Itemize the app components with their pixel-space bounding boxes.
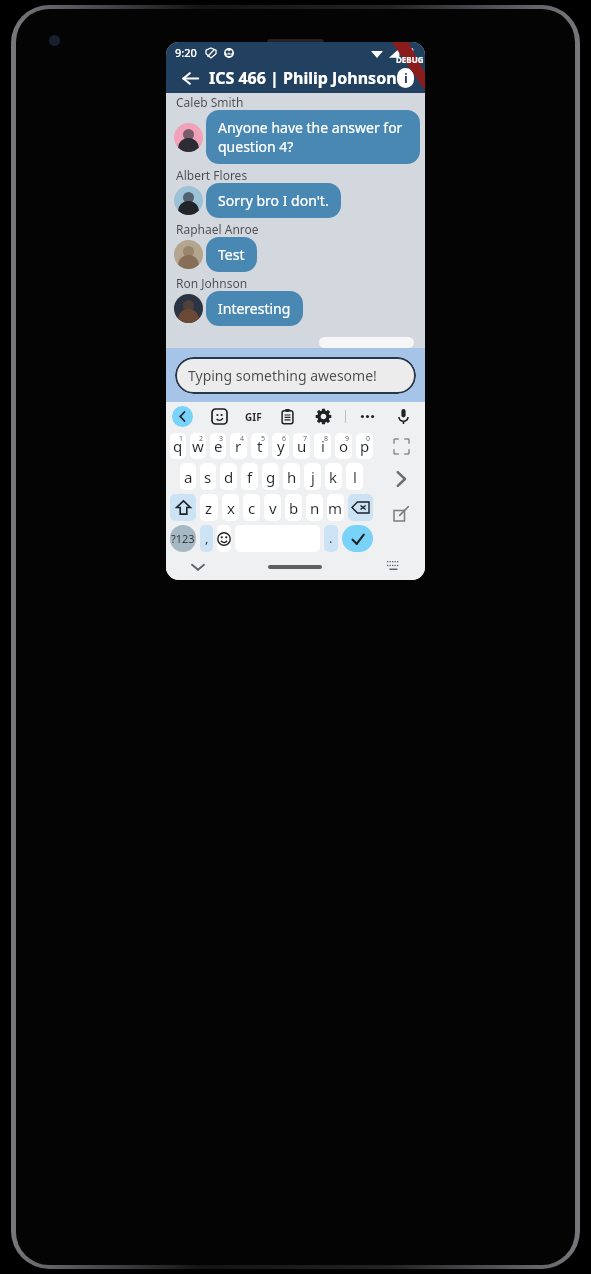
button[interactable]: Test [206,237,257,272]
staticText: 1 [179,434,184,444]
staticText: i [404,69,408,87]
staticText: Typing something awesome! [188,366,377,385]
staticText: s [204,467,212,487]
staticText: l [353,467,357,487]
staticText: h [287,467,297,487]
staticText: 5 [261,434,266,444]
button[interactable]: p [356,433,373,459]
button[interactable]: Back [177,65,203,91]
button[interactable]: j [304,463,321,490]
button[interactable]: Typing something awesome! [175,357,416,394]
staticText: 4 [240,434,245,444]
button[interactable]: Hide keyboard [188,557,208,577]
button[interactable]: Shift [170,494,196,521]
staticText: n [310,498,320,518]
staticText: . [329,529,333,547]
staticText: Caleb Smith [176,94,244,110]
staticText: v [269,498,277,518]
button[interactable]: g [262,463,279,490]
button[interactable]: l [346,463,363,490]
button[interactable]: q [170,433,186,459]
staticText: r [235,436,242,456]
button[interactable]: Hey Guys!! [319,337,414,348]
button[interactable]: h [283,463,300,490]
button[interactable]: m [327,494,344,521]
button[interactable]: n [306,494,323,521]
staticText: z [205,498,213,518]
staticText: o [339,436,349,456]
button[interactable]: u [293,433,310,459]
staticText: ?123 [171,531,195,546]
button[interactable]: Back [172,406,193,427]
button[interactable]: Interesting [206,291,303,326]
staticText: e [214,436,223,456]
staticText: DEBUG [396,54,424,65]
button[interactable]: Send [342,525,373,552]
staticText: 9:20 [175,45,197,60]
button[interactable]: e [210,433,226,459]
staticText: 2 [199,434,204,444]
button[interactable]: Info [397,65,414,91]
staticText: Albert Flores [176,167,248,183]
staticText: Anyone have the answer for question 4? [218,118,408,156]
staticText: d [224,467,234,487]
button[interactable]: k [325,463,342,490]
button[interactable]: Emoji [217,525,231,552]
staticText: y [277,436,285,456]
button[interactable]: Resize keyboard [377,431,425,462]
button[interactable]: Sticker [209,406,230,427]
button[interactable]: z [200,494,218,521]
staticText: 8 [324,434,329,444]
staticText: x [227,498,235,518]
button[interactable]: Next [377,462,425,496]
staticText: q [173,436,183,456]
staticText: 3 [219,434,224,444]
button[interactable]: i [314,433,331,459]
staticText: , [205,529,209,547]
button[interactable]: a [180,463,196,490]
button[interactable]: d [220,463,237,490]
button[interactable]: . [324,525,338,552]
button[interactable]: f [241,463,258,490]
staticText: i [321,436,325,456]
button[interactable]: GIF [245,410,262,424]
button[interactable]: Backspace [348,494,373,521]
button[interactable]: Voice [393,406,414,427]
staticText: 9 [345,434,350,444]
button[interactable]: t [251,433,268,459]
staticText: 6 [282,434,287,444]
button[interactable]: w [190,433,206,459]
button[interactable]: y [272,433,289,459]
button[interactable]: Anyone have the answer for question 4? [206,110,420,164]
staticText: f [247,467,253,487]
button[interactable]: v [264,494,281,521]
button[interactable]: Sorry bro I don't. [206,183,341,218]
button[interactable]: Settings [313,406,334,427]
button[interactable]: More [357,406,378,427]
button[interactable]: o [335,433,352,459]
staticText: Raphael Anroe [176,221,259,237]
staticText: 7 [303,434,308,444]
button[interactable]: Open in new window [377,496,425,530]
staticText: Interesting [218,299,291,318]
staticText: w [192,436,204,456]
button[interactable]: Switch input method [383,557,403,577]
staticText: Test [218,245,245,264]
staticText: Sorry bro I don't. [218,191,329,210]
staticText: c [248,498,256,518]
staticText: 0 [366,434,371,444]
staticText: b [289,498,299,518]
button[interactable]: b [285,494,302,521]
button[interactable]: Clipboard [277,406,298,427]
staticText: m [328,498,343,518]
button[interactable]: s [200,463,216,490]
button[interactable]: , [200,525,213,552]
button[interactable]: x [222,494,239,521]
button[interactable]: c [243,494,260,521]
staticText: u [297,436,307,456]
staticText: t [257,436,263,456]
staticText: GIF [245,410,262,424]
button[interactable]: r [230,433,247,459]
button[interactable]: ?123 [170,525,196,552]
